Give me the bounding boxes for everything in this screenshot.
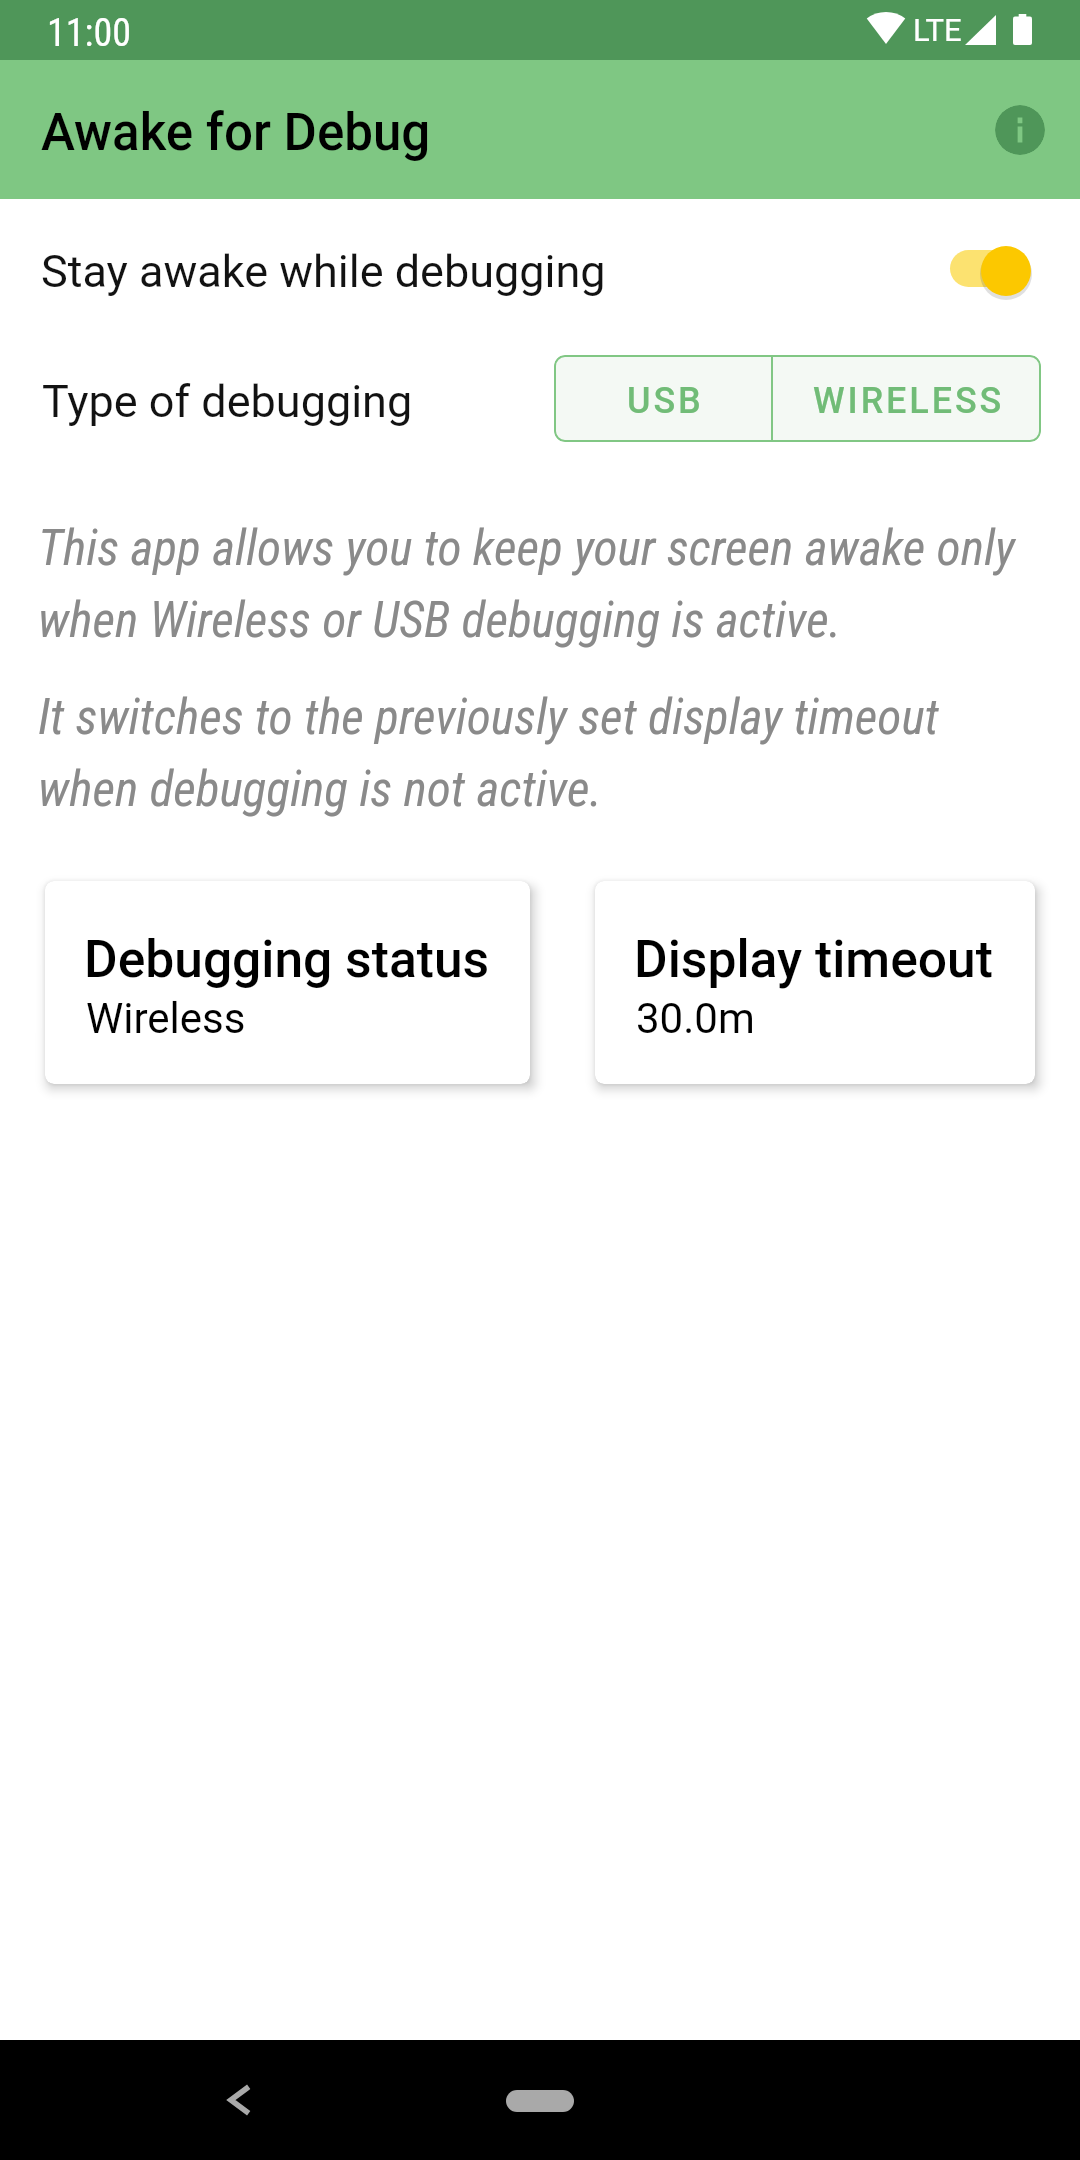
- button[interactable]: Back: [222, 2083, 256, 2117]
- button[interactable]: Info: [995, 105, 1045, 155]
- staticText: WIRELESS: [813, 380, 1005, 422]
- button[interactable]: Stay awake while debugging: [0, 210, 1080, 330]
- button[interactable]: USB: [554, 355, 771, 442]
- staticText: Debugging status: [84, 929, 490, 989]
- staticText: Wireless: [86, 994, 246, 1043]
- staticText: Display timeout: [634, 929, 993, 989]
- button[interactable]: WIRELESS: [773, 355, 1041, 442]
- staticText: USB: [627, 380, 704, 422]
- staticText: Type of debugging: [42, 375, 413, 428]
- staticText: 30.0m: [636, 994, 755, 1043]
- button[interactable]: Home: [506, 2090, 574, 2112]
- staticText: 11:00: [47, 11, 131, 56]
- button[interactable]: Stay awake while debugging toggle: [944, 241, 1038, 301]
- staticText: Awake for Debug: [41, 103, 431, 163]
- staticText: Stay awake while debugging: [41, 245, 606, 298]
- button[interactable]: Display timeout: [595, 881, 1035, 1084]
- staticText: It switches to the previously set displa…: [38, 688, 1038, 818]
- staticText: LTE: [913, 12, 962, 48]
- staticText: This app allows you to keep your screen …: [38, 519, 1038, 649]
- button[interactable]: Debugging status: [45, 881, 530, 1084]
